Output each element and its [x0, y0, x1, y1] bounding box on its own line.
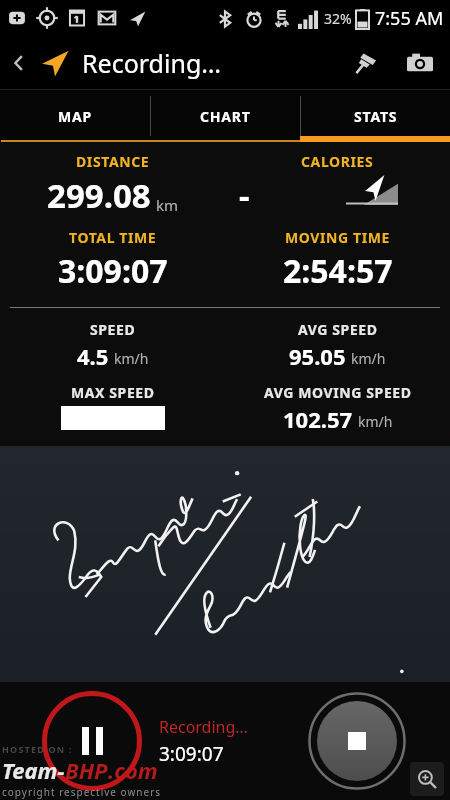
staticText: 3:09:07	[58, 249, 168, 293]
staticText: Recording…	[82, 46, 222, 80]
staticText: 2:54:57	[283, 249, 393, 293]
staticText: km/h	[358, 412, 393, 431]
staticText: STATS	[354, 107, 398, 126]
staticText: Recording…	[159, 716, 248, 738]
staticText: .com	[108, 755, 158, 785]
staticText: 4.5	[77, 341, 109, 371]
staticText: MAX SPEED	[71, 383, 155, 402]
button[interactable]: MAP	[0, 90, 150, 142]
button[interactable]: Pin marker	[346, 43, 386, 83]
button[interactable]: CHART	[151, 90, 300, 142]
staticText: TOTAL TIME	[69, 228, 157, 247]
button[interactable]: STATS	[301, 90, 450, 142]
staticText: 32%	[324, 9, 352, 28]
staticText: 7:55 AM	[375, 6, 444, 31]
staticText: CALORIES	[301, 152, 374, 171]
staticText: km/h	[114, 349, 149, 368]
staticText: 102.57	[283, 404, 353, 434]
staticText: 299.08	[47, 173, 151, 218]
staticText: copyright respective owners	[2, 785, 162, 799]
staticText: 3:09:07	[159, 741, 224, 767]
staticText: AVG SPEED	[298, 320, 378, 339]
staticText: km/h	[351, 349, 386, 368]
staticText: 95.05	[289, 341, 346, 371]
button[interactable]: Stop recording	[308, 692, 406, 790]
button[interactable]: Pause recording	[42, 691, 142, 791]
staticText: DISTANCE	[76, 152, 150, 171]
staticText: AVG MOVING SPEED	[264, 383, 412, 402]
staticText: BHP	[65, 755, 108, 785]
button[interactable]: Back	[4, 48, 34, 78]
button[interactable]: Zoom in	[410, 762, 444, 796]
staticText: CHART	[200, 107, 251, 126]
staticText: MOVING TIME	[285, 228, 391, 247]
staticText: Team-	[2, 755, 65, 785]
staticText: -	[239, 173, 250, 211]
staticText: km	[156, 195, 179, 215]
staticText: SPEED	[90, 320, 136, 339]
staticText: HOSTED ON :	[2, 743, 73, 755]
button[interactable]: Take photo	[400, 43, 440, 83]
staticText: MAP	[58, 107, 92, 126]
